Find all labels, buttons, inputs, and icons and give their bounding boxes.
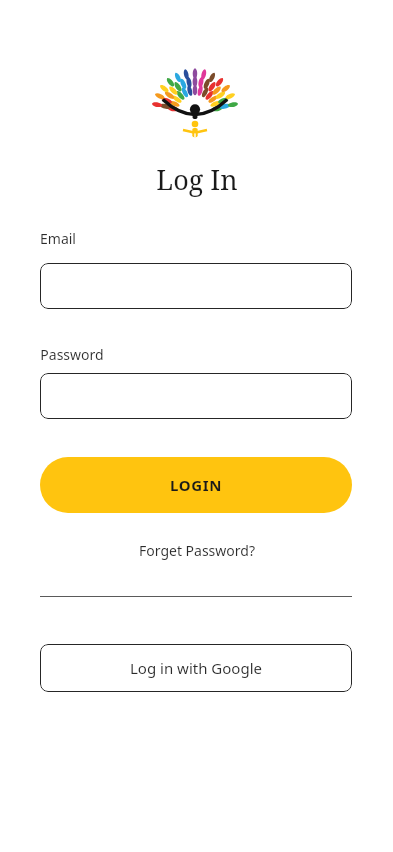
button[interactable]: Forget Password? <box>133 539 261 562</box>
staticText: LOGIN <box>170 475 222 495</box>
button[interactable]: LOGIN <box>40 457 352 513</box>
button[interactable]: Email input field <box>40 263 352 309</box>
button[interactable]: Password input field <box>40 373 352 419</box>
staticText: Forget Password? <box>139 541 255 560</box>
staticText: Email <box>40 229 76 248</box>
staticText: Log In <box>156 161 238 198</box>
staticText: Log in with Google <box>130 658 262 678</box>
button[interactable]: Log in with Google <box>40 644 352 692</box>
staticText: Password <box>40 345 104 364</box>
